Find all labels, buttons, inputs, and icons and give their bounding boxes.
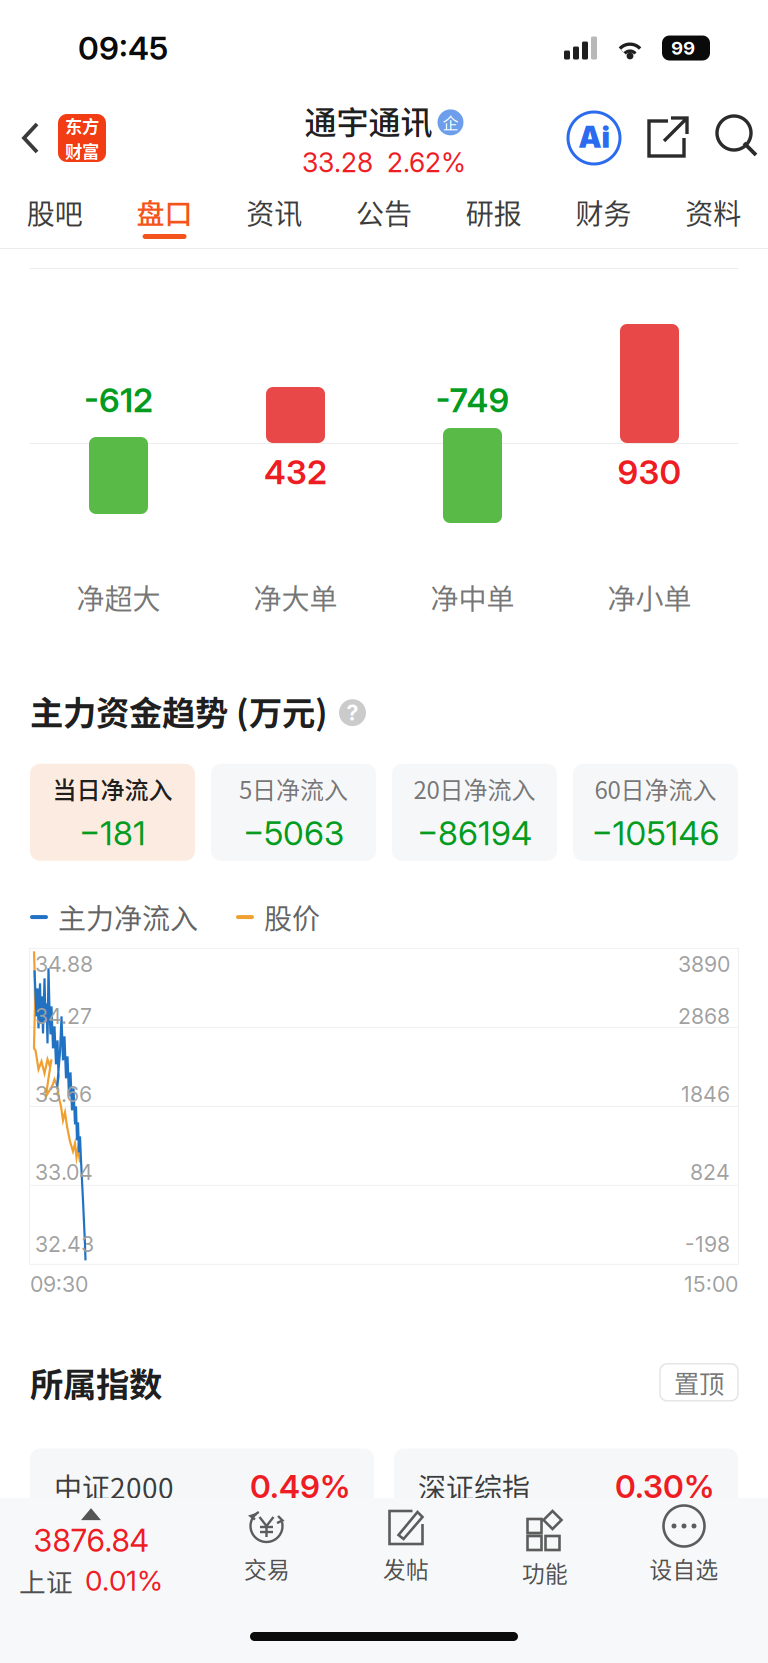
- button[interactable]: 置顶: [660, 1364, 738, 1401]
- button[interactable]: 交易: [219, 1498, 315, 1610]
- staticText: 净小单: [607, 577, 691, 617]
- staticText: 3890: [678, 951, 730, 977]
- staticText: 33.04: [35, 1159, 93, 1185]
- button[interactable]: 股吧: [0, 180, 110, 248]
- staticText: 2868: [678, 1003, 730, 1029]
- staticText: 企: [442, 111, 458, 134]
- staticText: −181: [79, 813, 146, 853]
- staticText: 中证2000: [54, 1466, 174, 1507]
- staticText: 财务: [575, 192, 631, 232]
- staticText: 5日净流入: [239, 771, 348, 806]
- staticText: 34.88: [35, 951, 93, 977]
- staticText: 资料: [685, 192, 741, 232]
- button[interactable]: 资讯: [219, 180, 329, 248]
- staticText: 34.27: [35, 1003, 92, 1029]
- staticText: 60日净流入: [594, 771, 716, 806]
- button[interactable]: 资料: [658, 180, 768, 248]
- staticText: −105146: [591, 813, 719, 853]
- staticText: 930: [617, 452, 681, 492]
- staticText: 09:45: [78, 29, 168, 67]
- staticText: 发帖: [383, 1552, 429, 1585]
- button[interactable]: 功能: [497, 1498, 593, 1610]
- button[interactable]: 东方: [0, 96, 116, 180]
- staticText: 33.66: [35, 1081, 92, 1107]
- button[interactable]: 财务: [549, 180, 658, 248]
- button[interactable]: 中证2000: [30, 1448, 374, 1524]
- button[interactable]: 搜索: [714, 114, 762, 162]
- button[interactable]: 5日净流入: [211, 764, 376, 861]
- staticText: 置顶: [674, 1364, 724, 1401]
- staticText: 股价: [264, 897, 320, 937]
- staticText: 1846: [681, 1081, 730, 1107]
- staticText: 824: [690, 1159, 730, 1185]
- staticText: 公告: [356, 192, 412, 232]
- button[interactable]: 分享: [644, 114, 692, 162]
- staticText: 通宇通讯: [304, 97, 432, 143]
- staticText: 20日净流入: [413, 771, 535, 806]
- staticText: 资讯: [246, 192, 302, 232]
- staticText: 主力净流入: [58, 897, 198, 937]
- staticText: 深证综指: [418, 1466, 530, 1507]
- staticText: 33.28: [302, 146, 373, 179]
- staticText: ?: [346, 700, 358, 726]
- button[interactable]: 研报: [439, 180, 549, 248]
- button[interactable]: 公告: [329, 180, 439, 248]
- staticText: 设自选: [649, 1552, 718, 1585]
- button[interactable]: 60日净流入: [573, 764, 738, 861]
- button[interactable]: 发帖: [358, 1498, 454, 1610]
- staticText: -198: [685, 1231, 730, 1257]
- staticText: 0.30%: [615, 1467, 714, 1506]
- staticText: 所属指数: [30, 1358, 162, 1406]
- staticText: Ai: [578, 119, 609, 155]
- button[interactable]: 当日净流入: [30, 764, 195, 861]
- staticText: 32.43: [35, 1231, 94, 1257]
- staticText: 研报: [466, 192, 522, 232]
- staticText: −5063: [243, 813, 344, 853]
- staticText: 净超大: [76, 577, 160, 617]
- staticText: 上证: [19, 1561, 73, 1600]
- button[interactable]: 盘口: [110, 180, 219, 248]
- staticText: 2.62%: [387, 146, 466, 179]
- staticText: 东方: [65, 113, 99, 138]
- staticText: 09:30: [30, 1271, 88, 1297]
- staticText: 盘口: [137, 192, 193, 232]
- staticText: 主力资金趋势 (万元): [30, 686, 328, 735]
- staticText: 99: [671, 37, 695, 59]
- staticText: 功能: [522, 1556, 568, 1589]
- staticText: 当日净流入: [52, 771, 172, 806]
- staticText: 0.49%: [250, 1467, 350, 1506]
- staticText: −86194: [417, 813, 532, 853]
- button[interactable]: AI 助手: [566, 110, 622, 166]
- staticText: 财富: [65, 138, 99, 163]
- staticText: 净中单: [430, 577, 514, 617]
- staticText: 0.01%: [85, 1564, 163, 1597]
- button[interactable]: 3876.84: [6, 1498, 176, 1610]
- button[interactable]: 深证综指: [394, 1448, 738, 1524]
- button[interactable]: 20日净流入: [392, 764, 557, 861]
- staticText: 3876.84: [33, 1522, 148, 1559]
- staticText: -749: [435, 380, 509, 420]
- staticText: 432: [264, 452, 327, 492]
- staticText: 股吧: [27, 192, 83, 232]
- staticText: 净大单: [253, 577, 337, 617]
- staticText: 15:00: [684, 1271, 738, 1297]
- button[interactable]: 设自选: [636, 1498, 732, 1610]
- staticText: 交易: [244, 1552, 290, 1585]
- staticText: -612: [84, 380, 153, 420]
